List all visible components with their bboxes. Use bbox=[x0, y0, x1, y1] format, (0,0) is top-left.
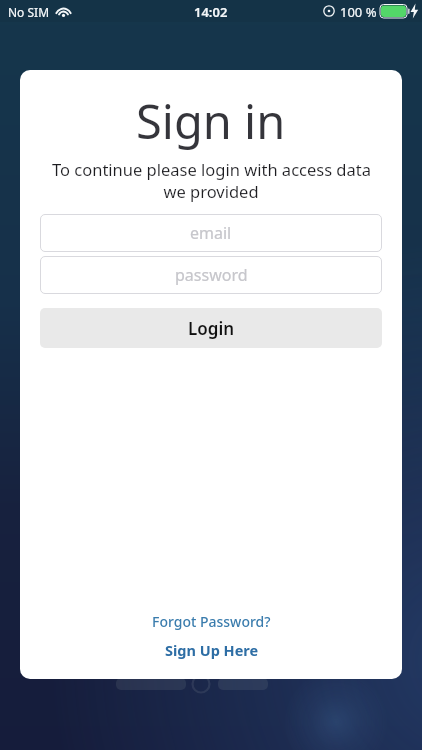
staticText: 100 % bbox=[340, 3, 377, 21]
staticText: Login bbox=[188, 317, 235, 340]
button[interactable]: password bbox=[40, 256, 382, 294]
staticText: To continue please login with access dat… bbox=[52, 158, 371, 180]
staticText: No SIM bbox=[8, 4, 50, 20]
staticText: password bbox=[175, 264, 248, 286]
staticText: email bbox=[190, 222, 232, 244]
staticText: Sign Up Here bbox=[165, 640, 259, 660]
staticText: Sign in bbox=[136, 89, 286, 153]
staticText: 14:02 bbox=[194, 3, 228, 21]
button[interactable]: Login bbox=[40, 308, 382, 348]
button[interactable]: Forgot Password? bbox=[149, 609, 274, 634]
staticText: we provided bbox=[163, 180, 259, 202]
staticText: Forgot Password? bbox=[152, 612, 271, 631]
button[interactable]: email bbox=[40, 214, 382, 252]
button[interactable]: Sign Up Here bbox=[162, 637, 262, 663]
